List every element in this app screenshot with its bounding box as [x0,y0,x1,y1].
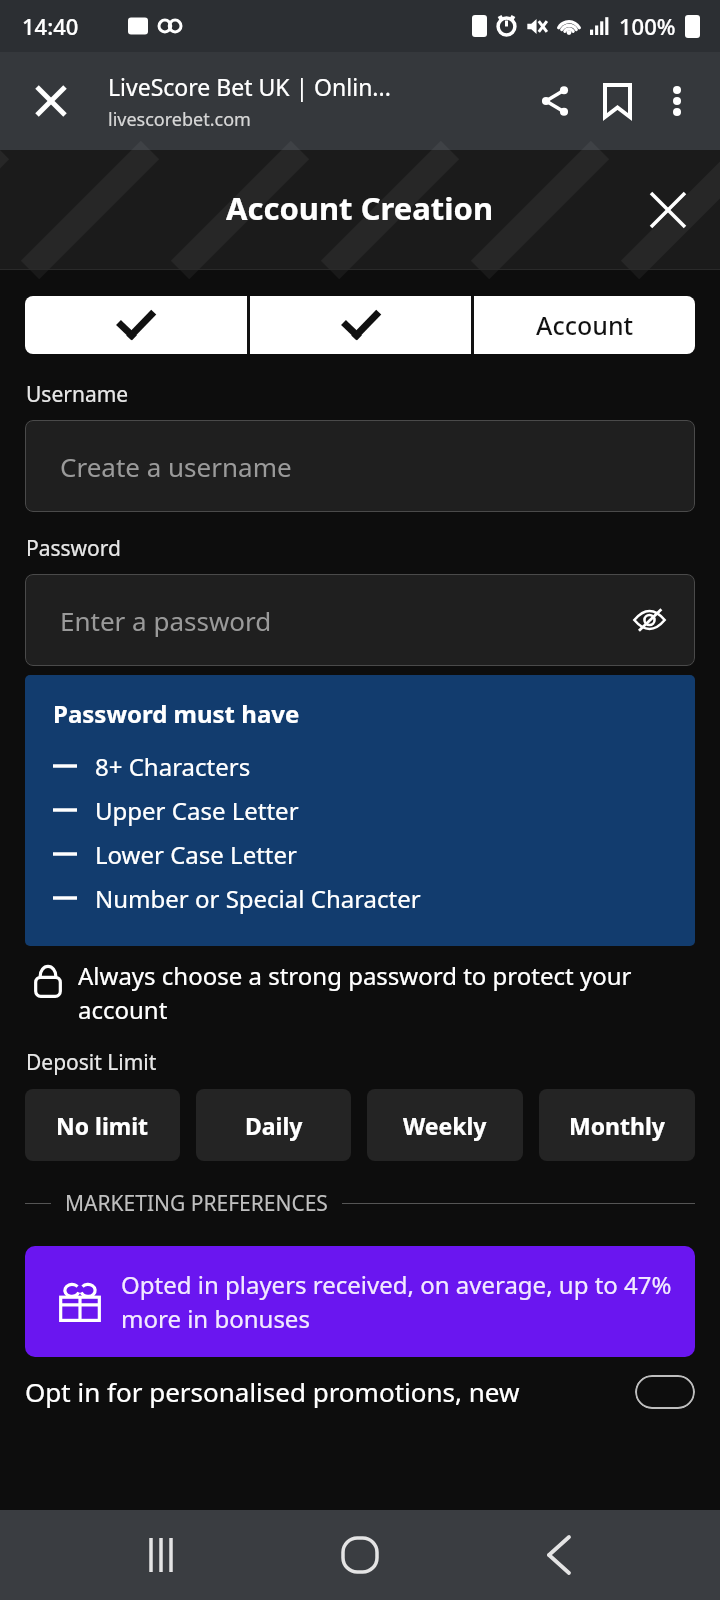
staticText: Opted in players received, on average, u… [121,1268,675,1335]
staticText: Monthly [569,1110,665,1141]
staticText: Lower Case Letter [95,838,297,871]
staticText: Password [26,534,121,563]
button[interactable]: No limit [25,1089,180,1161]
staticText: 8+ Characters [95,750,251,783]
button[interactable]: Weekly [367,1089,523,1161]
button[interactable]: Opted in players received, on average, u… [25,1246,695,1357]
button[interactable]: Share [524,70,586,132]
button[interactable]: Recent apps [126,1519,198,1591]
staticText: Password must have [53,697,300,730]
button[interactable]: Close account creation [638,180,698,240]
staticText: Upper Case Letter [95,794,299,827]
staticText: Opt in for personalised promotions, new [25,1374,520,1409]
button[interactable]: Daily [196,1089,351,1161]
button[interactable]: Back [522,1519,594,1591]
button[interactable]: Create a username [25,420,695,512]
staticText: Number or Special Character [95,882,421,915]
button[interactable]: Show password [623,594,675,646]
staticText: Account [536,308,634,342]
button[interactable]: Enter a password [25,574,695,666]
staticText: Account Creation [226,187,494,229]
staticText: Username [26,380,129,409]
button[interactable]: Step 2 complete [250,296,471,354]
staticText: No limit [56,1110,149,1141]
staticText: 14:40 [22,11,79,41]
staticText: MARKETING PREFERENCES [65,1189,328,1218]
button[interactable]: Step 1 complete [25,296,247,354]
staticText: LiveScore Bet UK | Onlin... [108,71,391,102]
staticText: livescorebet.com [108,107,251,132]
staticText: Create a username [60,449,292,484]
staticText: Weekly [403,1110,487,1141]
staticText: Daily [245,1110,303,1141]
button[interactable]: Bookmark [586,70,648,132]
button[interactable]: Home [324,1519,396,1591]
staticText: Deposit Limit [26,1048,157,1077]
button[interactable]: Account [474,296,695,354]
staticText: Always choose a strong password to prote… [78,959,680,1026]
button[interactable]: More options [648,72,706,130]
staticText: 100% [619,11,676,41]
button[interactable]: Marketing opt-in toggle [635,1375,695,1409]
staticText: Enter a password [60,603,272,638]
button[interactable]: Close [18,68,84,134]
button[interactable]: Monthly [539,1089,695,1161]
